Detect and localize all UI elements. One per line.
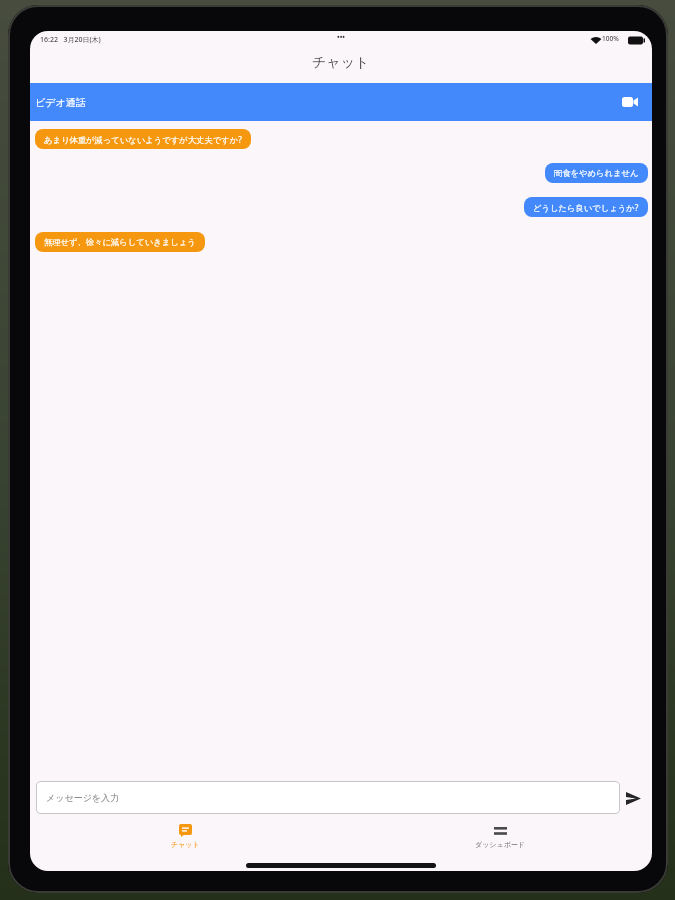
button[interactable]: [621, 786, 645, 810]
staticText: 間食をやめられません: [554, 168, 639, 178]
button[interactable]: あまり体重が減っていないようですが大丈夫ですか?: [35, 129, 251, 149]
staticText: どうしたら良いでしょうか?: [533, 202, 639, 213]
button[interactable]: メッセージを入力: [36, 781, 620, 814]
button[interactable]: ビデオ通話: [30, 83, 652, 121]
staticText: あまり体重が減っていないようですが大丈夫ですか?: [44, 134, 242, 145]
staticText: 100%: [602, 34, 619, 43]
staticText: •••: [337, 33, 345, 43]
staticText: チャット: [171, 840, 200, 849]
button[interactable]: どうしたら良いでしょうか?: [524, 197, 648, 217]
staticText: ビデオ通話: [35, 96, 86, 109]
staticText: 16:22 3月20日(木): [40, 35, 101, 45]
button[interactable]: ダッシュボード: [470, 824, 530, 858]
button[interactable]: チャット: [155, 824, 215, 858]
staticText: ダッシュボード: [475, 840, 525, 849]
staticText: 無理せず、徐々に減らしていきましょう: [44, 237, 196, 247]
button[interactable]: 無理せず、徐々に減らしていきましょう: [35, 232, 205, 252]
staticText: チャット: [312, 54, 370, 72]
button[interactable]: 間食をやめられません: [545, 163, 648, 183]
staticText: メッセージを入力: [46, 792, 120, 803]
